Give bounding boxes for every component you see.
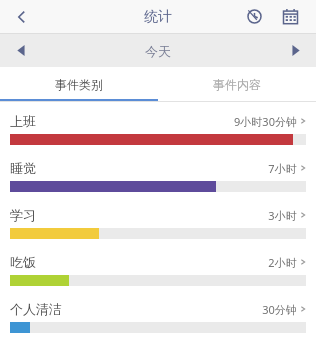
staticText: 事件类别: [55, 77, 103, 92]
button[interactable]: 事件内容: [158, 67, 316, 101]
button[interactable]: Calendar: [272, 0, 308, 33]
button[interactable]: 事件类别: [0, 67, 158, 101]
button[interactable]: History: [236, 0, 272, 33]
button[interactable]: 睡觉: [0, 155, 316, 202]
staticText: 3小时: [268, 208, 297, 223]
button[interactable]: 个人清洁: [0, 296, 316, 342]
button[interactable]: Next day: [274, 34, 316, 67]
button[interactable]: Back: [0, 0, 44, 33]
staticText: 个人清洁: [10, 301, 62, 317]
staticText: 事件内容: [213, 77, 261, 92]
button[interactable]: 上班: [0, 108, 316, 155]
staticText: 30分钟: [262, 302, 297, 317]
staticText: 统计: [144, 8, 172, 26]
staticText: 今天: [145, 43, 171, 59]
staticText: 吃饭: [10, 254, 36, 270]
button[interactable]: Previous day: [0, 34, 42, 67]
staticText: 学习: [10, 207, 36, 223]
button[interactable]: 吃饭: [0, 249, 316, 296]
button[interactable]: 学习: [0, 202, 316, 249]
staticText: 7小时: [268, 161, 297, 176]
staticText: 2小时: [268, 255, 297, 270]
staticText: 睡觉: [10, 160, 36, 176]
staticText: 9小时30分钟: [234, 114, 297, 129]
staticText: 上班: [10, 113, 36, 129]
